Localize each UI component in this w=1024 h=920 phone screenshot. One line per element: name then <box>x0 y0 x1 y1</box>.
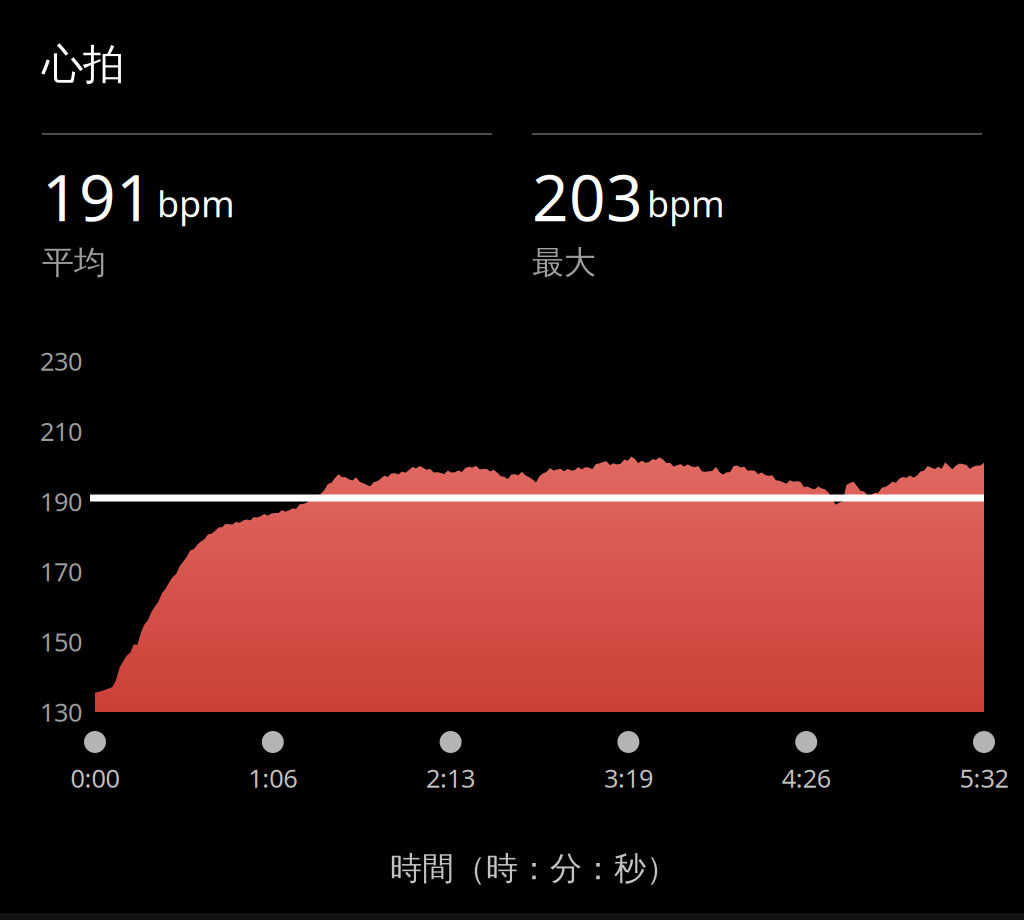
staticText: 2:13 <box>426 761 475 795</box>
staticText: 0:00 <box>70 761 119 795</box>
staticText: 3:19 <box>604 761 653 795</box>
staticText: 210 <box>40 414 82 448</box>
staticText: 170 <box>40 555 82 588</box>
staticText: 130 <box>40 695 82 729</box>
staticText: 191 <box>42 154 153 239</box>
staticText: 心拍 <box>42 39 124 90</box>
staticText: 5:32 <box>959 761 1008 795</box>
staticText: 1:06 <box>248 761 297 795</box>
staticText: 4:26 <box>782 761 831 795</box>
staticText: bpm <box>157 179 235 227</box>
staticText: 230 <box>40 344 82 378</box>
staticText: 150 <box>40 625 82 658</box>
button[interactable]: 191 <box>42 133 492 282</box>
staticText: 最大 <box>532 243 596 282</box>
staticText: bpm <box>647 179 725 227</box>
staticText: 平均 <box>42 243 106 282</box>
staticText: 時間（時：分：秒） <box>390 849 678 888</box>
staticText: 190 <box>40 484 82 518</box>
staticText: 203 <box>532 154 643 239</box>
button[interactable]: 203 <box>532 133 982 282</box>
